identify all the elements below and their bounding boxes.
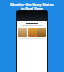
button[interactable] xyxy=(18,28,27,37)
button[interactable] xyxy=(37,28,46,37)
staticText: Monitor the Buoy Status in Real Time xyxy=(0,2,64,11)
button[interactable] xyxy=(28,28,37,37)
